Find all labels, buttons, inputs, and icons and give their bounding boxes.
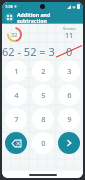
staticText: Remains: [63, 27, 76, 31]
button[interactable]: 4: [5, 84, 27, 106]
button[interactable]: 9: [58, 108, 80, 130]
staticText: 0: [41, 138, 46, 148]
button[interactable]: 7: [5, 108, 27, 130]
staticText: 2: [41, 66, 46, 76]
button[interactable]: Submit: [58, 132, 80, 154]
staticText: 3: [67, 66, 72, 76]
staticText: 62 - 52 = 3: [2, 44, 55, 58]
staticText: 6: [67, 90, 72, 100]
staticText: 4: [14, 90, 19, 100]
staticText: 5: [41, 90, 46, 100]
button[interactable]: App icon: [2, 11, 83, 24]
button[interactable]: 3: [58, 60, 80, 82]
staticText: 7: [14, 114, 19, 124]
staticText: 0: [66, 44, 73, 58]
other: App icon: [5, 13, 14, 22]
button[interactable]: Backspace: [5, 132, 27, 154]
staticText: Addition and subtraction: [17, 11, 80, 24]
staticText: 32: [11, 31, 18, 38]
staticText: 1: [14, 66, 19, 76]
staticText: 11: [65, 31, 74, 41]
staticText: 7:06: [5, 4, 13, 9]
button[interactable]: 5: [32, 84, 54, 106]
staticText: 8: [41, 114, 46, 124]
button[interactable]: 1: [5, 60, 27, 82]
button[interactable]: 6: [58, 84, 80, 106]
button[interactable]: 0: [32, 132, 54, 154]
button[interactable]: 2: [32, 60, 54, 82]
button[interactable]: Score 32: [6, 26, 23, 43]
staticText: 9: [67, 114, 72, 124]
button[interactable]: 8: [32, 108, 54, 130]
